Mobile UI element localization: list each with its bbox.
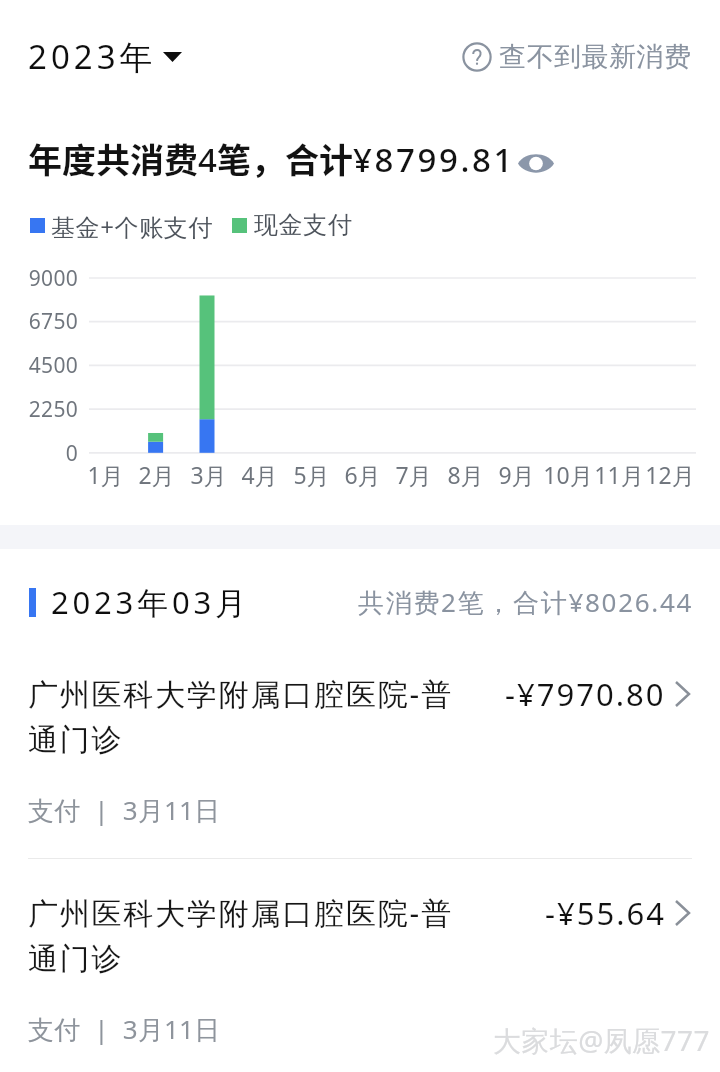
staticText: 6月 — [344, 459, 381, 490]
staticText: 0 — [0, 439, 78, 468]
staticText: 现金支付 — [254, 210, 353, 240]
staticText: 年度共消费 — [28, 134, 198, 183]
staticText: 2023年 — [28, 34, 157, 79]
staticText: 7月 — [395, 459, 432, 490]
button[interactable]: Toggle amount visibility — [514, 142, 558, 184]
other: Help — [462, 42, 492, 72]
staticText: 支付 | 3月11日 — [28, 792, 221, 828]
staticText: 12月 — [645, 459, 695, 490]
staticText: 基金+个账支付 — [51, 210, 213, 243]
staticText: 9000 — [0, 264, 78, 293]
staticText: 9月 — [498, 459, 535, 490]
staticText: 笔，合计 — [217, 134, 353, 183]
staticText: 大家坛@夙愿777 — [493, 1021, 710, 1059]
staticText: 2月 — [138, 459, 175, 490]
staticText: 4月 — [241, 459, 278, 490]
staticText: 8月 — [447, 459, 484, 490]
staticText: 2023年03月 — [51, 581, 250, 623]
staticText: 4 — [198, 137, 217, 182]
staticText: 5月 — [293, 459, 330, 490]
staticText: 4500 — [0, 351, 78, 380]
staticText: 广州医科大学附属口腔医院-普通门诊 — [28, 892, 456, 978]
staticText: 11月 — [594, 459, 644, 490]
staticText: 1月 — [87, 459, 124, 490]
staticText: 6750 — [0, 307, 78, 336]
staticText: ¥8799.81 — [353, 137, 515, 182]
staticText: -¥7970.80 — [505, 673, 666, 715]
staticText: 2250 — [0, 395, 78, 424]
staticText: 10月 — [543, 459, 593, 490]
staticText: 3月 — [190, 459, 227, 490]
button[interactable]: 广州医科大学附属口腔医院-普通门诊 — [0, 885, 720, 1072]
button[interactable]: 2023年 — [28, 34, 182, 79]
button[interactable]: 2023年03月 — [0, 570, 720, 634]
staticText: 广州医科大学附属口腔医院-普通门诊 — [28, 673, 456, 759]
button[interactable]: 广州医科大学附属口腔医院-普通门诊 — [0, 666, 720, 858]
staticText: 查不到最新消费 — [499, 40, 692, 74]
staticText: 共消费2笔，合计¥8026.44 — [358, 584, 694, 620]
button[interactable]: Help — [462, 40, 692, 74]
staticText: -¥55.64 — [545, 892, 666, 934]
staticText: 支付 | 3月11日 — [28, 1011, 221, 1047]
